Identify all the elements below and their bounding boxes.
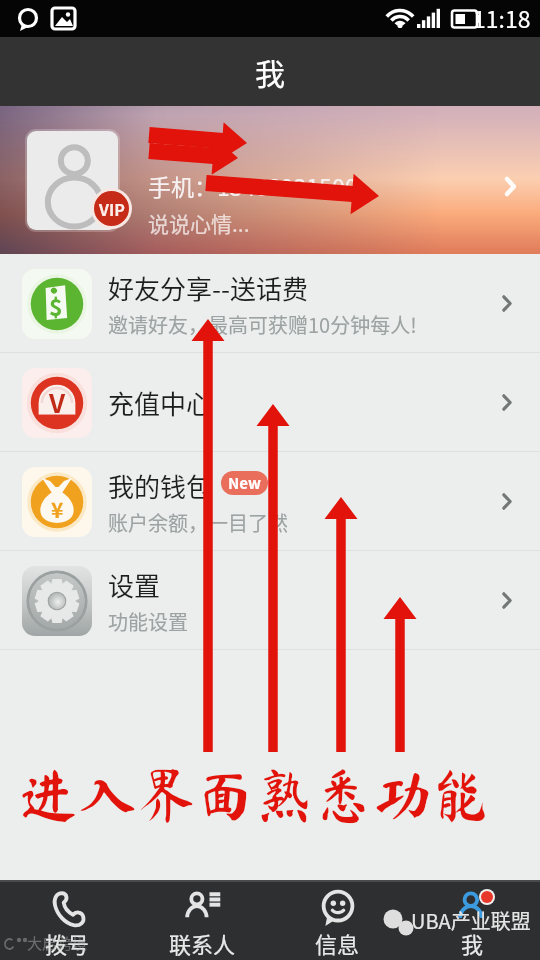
staticText: 好友分享--送话费 [108,269,309,307]
button[interactable]: $ [0,254,540,353]
staticText: 手机：13468931500 [148,169,358,202]
staticText: 大启跨境 [27,932,88,954]
staticText: 我 [461,927,484,959]
other: Open profile [505,177,516,196]
staticText: 信息 [315,927,360,959]
button[interactable]: 我 [405,880,540,960]
staticText: $ [49,289,63,322]
staticText: 充值中心 [108,384,213,422]
staticText: ¥ [51,494,64,524]
staticText: 某某某 [148,126,224,162]
staticText: 功能设置 [108,607,188,636]
staticText: 11:18 [473,1,531,34]
button[interactable]: ¥ [0,452,540,551]
staticText: 我的钱包 [108,467,213,505]
staticText: VIP [99,197,125,220]
button[interactable]: 信息 [270,880,405,960]
staticText: 进入界面熟悉功能 [19,765,492,824]
staticText: UBA产业联盟 [411,906,531,935]
staticText: 我 [255,50,285,93]
staticText: V [49,383,66,421]
staticText: 邀请好友，最高可获赠10分钟每人! [108,310,417,339]
button[interactable]: V [0,353,540,452]
button[interactable]: 联系人 [135,880,270,960]
staticText: 设置 [108,566,161,604]
staticText: 拨号 [45,927,90,959]
button[interactable]: 设置 [0,551,540,650]
staticText: 联系人 [169,927,236,959]
button[interactable]: VIP [0,106,540,254]
staticText: New [228,472,261,494]
button[interactable]: 拨号 [0,880,135,960]
staticText: 说说心情... [148,208,250,238]
staticText: 账户余额，一目了然 [108,508,288,537]
